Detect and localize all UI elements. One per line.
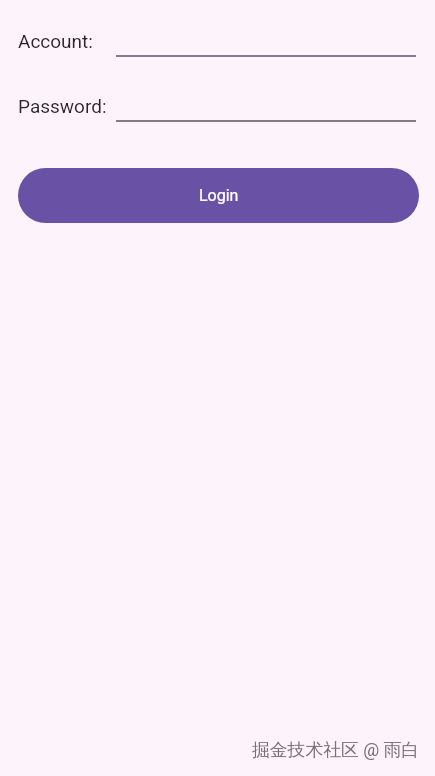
staticText: Password: — [18, 95, 107, 117]
button[interactable]: Password: — [0, 86, 435, 126]
button[interactable]: Account: — [0, 21, 435, 61]
button[interactable]: Login — [18, 168, 419, 223]
staticText: Account: — [18, 30, 93, 52]
staticText: 掘金技术社区 @ 雨白 — [252, 739, 420, 761]
staticText: Login — [199, 186, 239, 205]
